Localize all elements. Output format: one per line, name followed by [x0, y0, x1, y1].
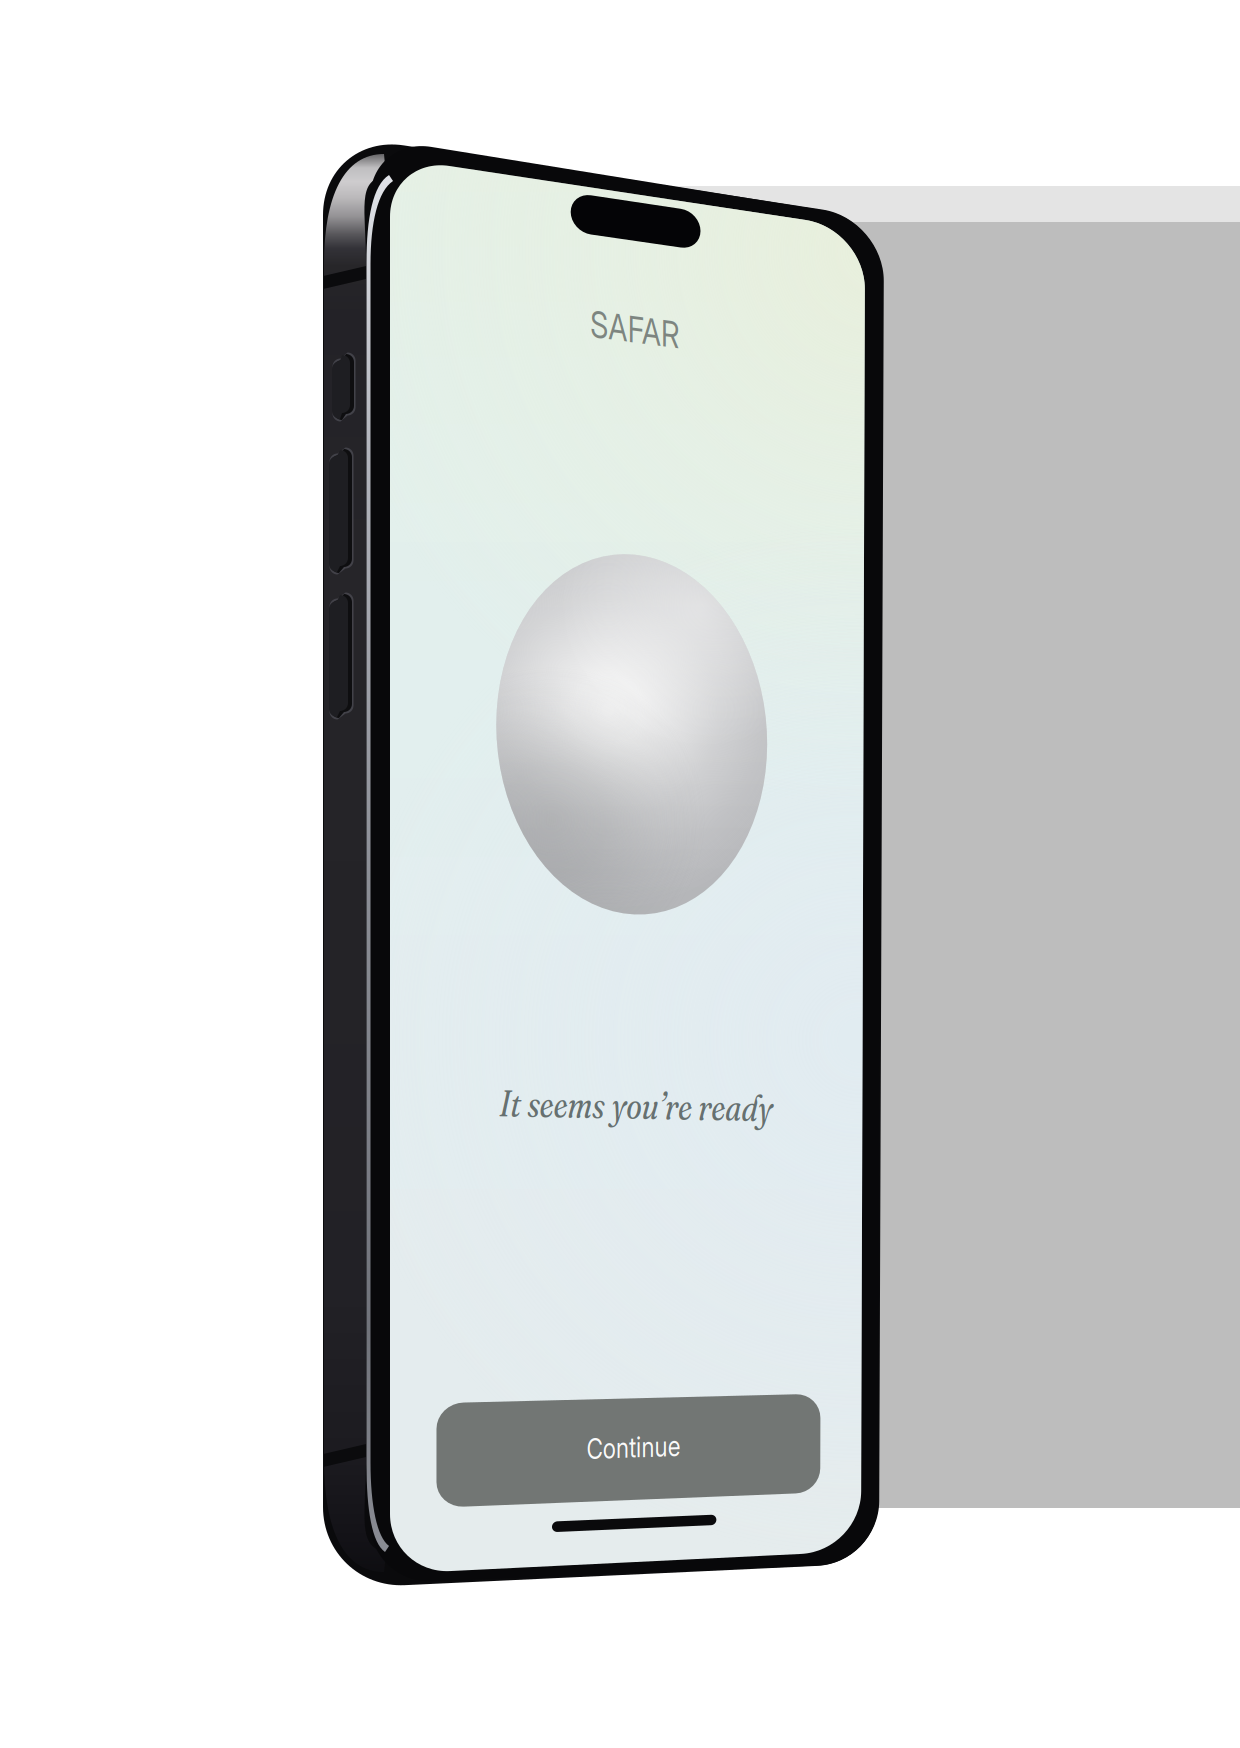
staticText: It seems you’re ready [459, 1081, 812, 1129]
staticText: Continue [573, 1429, 694, 1465]
staticText: SAFAR [577, 307, 692, 352]
button[interactable]: Continue [0, 0, 1240, 1748]
